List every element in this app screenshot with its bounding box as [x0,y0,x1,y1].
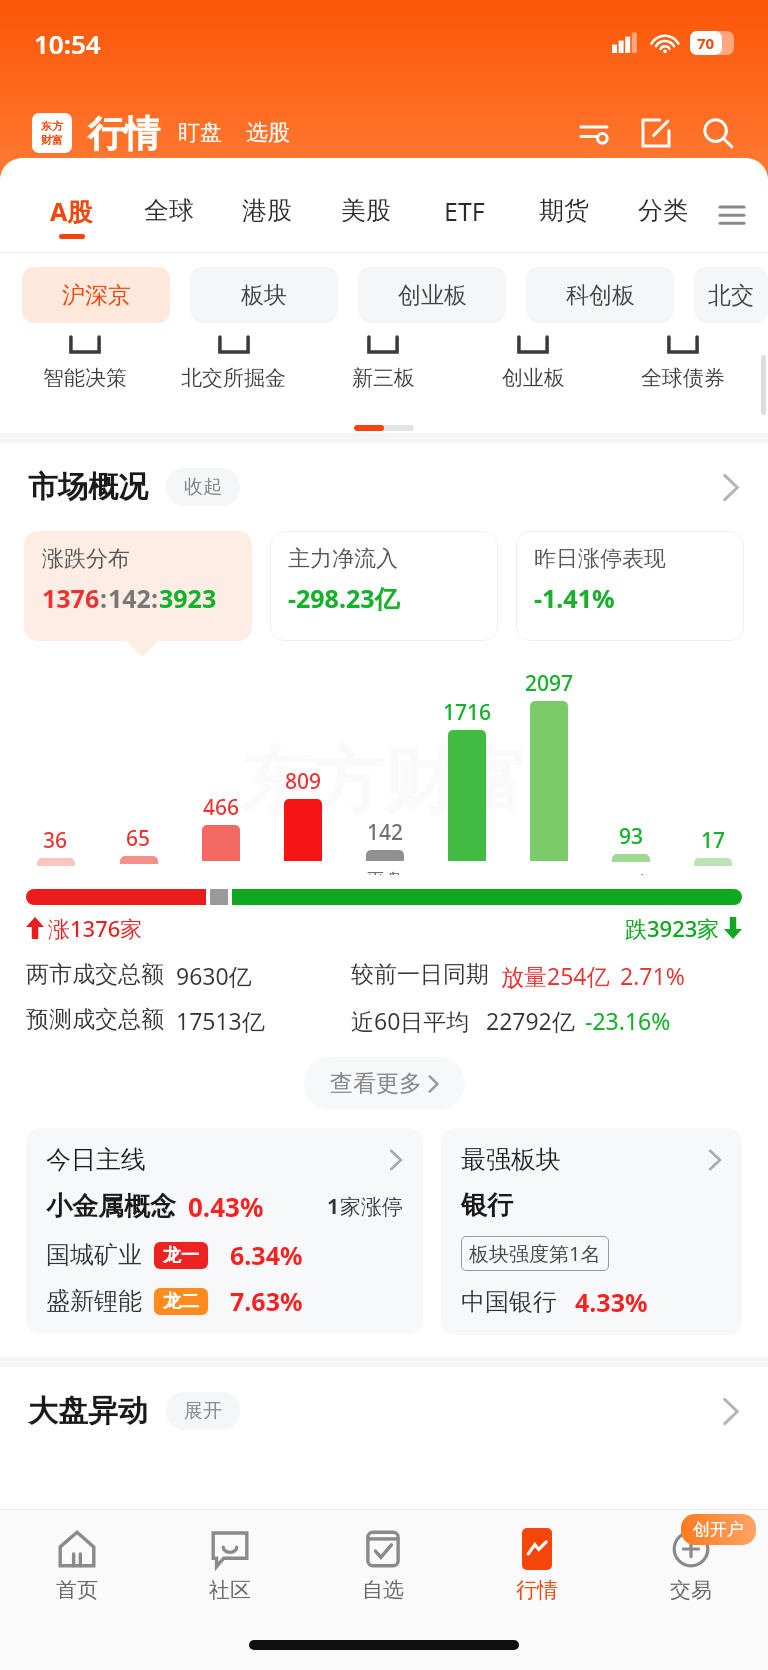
staticText: 平盘 [366,869,404,875]
staticText: 6.34% [230,1238,303,1272]
button[interactable]: Filter settings [572,111,616,155]
button[interactable]: Share [634,111,678,155]
staticText: 港股 [242,195,292,226]
button[interactable]: 社区 [153,1510,306,1620]
button[interactable]: 选股 [244,113,292,153]
button[interactable]: Search [696,111,740,155]
staticText: 3923 [159,581,217,615]
button[interactable]: 交易 [614,1510,768,1620]
staticText: 4.33% [575,1285,648,1319]
button[interactable]: 行情 [460,1510,614,1620]
staticText: A股 [50,194,93,228]
staticText: 板块强度第1名 [469,1240,601,1267]
staticText: 国城矿业 [46,1240,142,1270]
staticText: 70 [697,33,715,53]
staticText: 最强板块 [461,1144,561,1175]
staticText: 龙一 [163,1244,199,1267]
staticText: 1376 [42,581,100,615]
button[interactable]: 北交 [694,267,768,323]
button[interactable]: 最强板块 [441,1128,742,1335]
staticText: 93 [619,822,644,851]
staticText: 东方 [41,119,63,133]
button[interactable]: 收起 [184,475,222,499]
staticText: 新三板 [352,365,415,391]
button[interactable]: 期货 [514,180,613,252]
staticText: 查看更多 [330,1069,422,1098]
staticText: 今日主线 [46,1144,146,1175]
staticText: 自选 [362,1577,404,1603]
button[interactable]: 创业板 [358,267,506,323]
staticText: 0.43% [188,1189,264,1224]
staticText: 17 [701,826,726,855]
button[interactable]: 创开户 [681,1514,756,1545]
staticText: 全球债券 [641,365,725,391]
staticText: 小金属概念 [46,1190,176,1223]
staticText: 美股 [341,195,391,226]
staticText: 142 [367,818,404,847]
button[interactable]: 盯盘 [176,113,224,153]
staticText: 收起 [184,475,222,499]
button[interactable]: 大盘异动 [28,1367,740,1455]
staticText: 创业板 [398,281,467,310]
staticText: 银行 [461,1189,513,1222]
button[interactable]: 展开 [184,1399,222,1423]
staticText: 家涨停 [340,1194,403,1220]
button[interactable]: 板块 [190,267,338,323]
button[interactable]: 美股 [316,180,415,252]
staticText: 放量254亿 [501,960,610,991]
button[interactable]: 新三板 [308,337,458,391]
staticText: 1716 [443,698,492,727]
button[interactable]: 全球 [120,180,218,252]
staticText: -298.23亿 [288,581,400,615]
staticText: 盯盘 [178,119,222,147]
button[interactable]: 自选 [306,1510,460,1620]
button[interactable]: 港股 [218,180,316,252]
button[interactable]: 主力净流入 [270,531,498,641]
staticText: -23.16% [585,1005,671,1036]
staticText: 近60日平均 [351,1005,470,1036]
staticText: 市场概况 [28,468,148,506]
staticText: 涨跌分布 [42,545,130,573]
button[interactable]: 沪深京 [22,267,170,323]
button[interactable]: 市场概况 [28,443,740,531]
button[interactable]: 创业板 [458,337,608,391]
staticText: 板块 [241,281,287,310]
staticText: 智能决策 [43,365,127,391]
staticText: 1 [327,1192,340,1221]
button[interactable]: 首页 [0,1510,153,1620]
staticText: 10:54 [34,26,101,61]
staticText: 中国银行 [461,1287,557,1317]
staticText: 北交所掘金 [181,365,286,391]
staticText: 北交 [708,281,754,310]
staticText: 东方财富 [240,737,528,828]
button[interactable]: 昨日涨停表现 [516,531,744,641]
staticText: 财富 [41,133,63,147]
button[interactable]: ETF [415,180,514,252]
button[interactable]: 智能决策 [10,337,159,391]
button[interactable]: 分类 [613,180,712,252]
staticText: 较前一日同期 [351,960,489,989]
button[interactable]: 北交所掘金 [159,337,308,391]
staticText: : [100,581,108,615]
staticText: 主力净流入 [288,545,398,573]
button[interactable]: 涨跌分布 [24,531,252,641]
staticText: 全球 [144,195,194,226]
button[interactable]: 全球债券 [608,337,758,391]
button[interactable]: All categories [712,180,752,252]
staticText: 选股 [246,119,290,147]
staticText: 跌3923家 [625,913,720,943]
button[interactable]: 科创板 [526,267,674,323]
staticText: 分类 [638,195,688,226]
staticText: ETF [444,194,485,228]
button[interactable]: 今日主线 [26,1128,423,1334]
button[interactable]: A股 [22,180,120,252]
staticText: : [151,581,159,615]
staticText: 142 [108,581,151,615]
button[interactable]: 查看更多 [304,1057,465,1110]
